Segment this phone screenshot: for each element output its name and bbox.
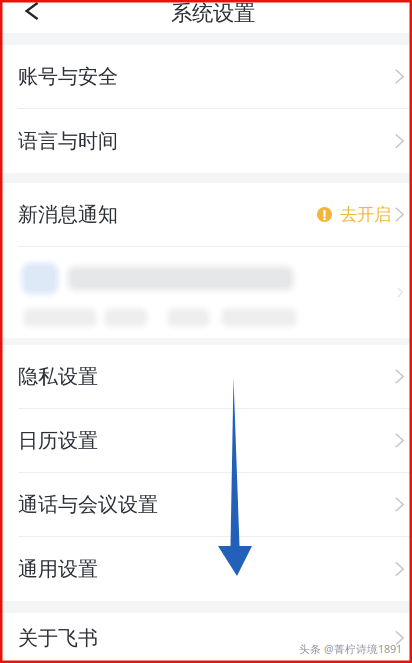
staticText: 头条 @菁柠诗境1891	[299, 642, 402, 656]
staticText: 语言与时间	[18, 129, 118, 153]
staticText: 日历设置	[18, 428, 98, 453]
staticText: 关于飞书	[18, 626, 98, 650]
staticText: !	[322, 205, 326, 224]
staticText: 隐私设置	[18, 364, 98, 389]
button[interactable]: 通话与会议设置	[0, 473, 412, 537]
staticText: 去开启	[340, 204, 391, 225]
staticText: 系统设置	[171, 0, 255, 26]
button[interactable]: 语言与时间	[0, 109, 412, 173]
button[interactable]: 通用设置	[0, 537, 412, 601]
button[interactable]: 关于飞书	[0, 613, 412, 663]
button[interactable]: Account	[0, 247, 412, 338]
button[interactable]: 隐私设置	[0, 345, 412, 409]
staticText: 通话与会议设置	[18, 492, 158, 517]
staticText: 新消息通知	[18, 202, 118, 227]
button[interactable]: 账号与安全	[0, 45, 412, 109]
staticText: 账号与安全	[18, 64, 118, 89]
staticText: 通用设置	[18, 557, 98, 581]
button[interactable]: Back	[0, 0, 57, 22]
button[interactable]: 日历设置	[0, 409, 412, 473]
button[interactable]: 新消息通知	[0, 183, 412, 247]
